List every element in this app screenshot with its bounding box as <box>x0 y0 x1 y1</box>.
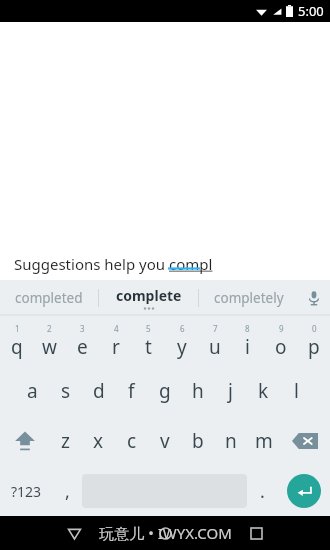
button[interactable]: 1 <box>0 316 33 366</box>
staticText: 5:00 <box>298 2 324 20</box>
button[interactable]: Backspace <box>280 416 330 466</box>
button[interactable]: m <box>247 416 280 466</box>
staticText: y <box>177 334 187 360</box>
staticText: ?123 <box>11 482 42 501</box>
button[interactable]: Voice input <box>298 280 330 316</box>
button[interactable]: Back <box>57 516 91 550</box>
button[interactable]: 6 <box>165 316 198 366</box>
button[interactable]: f <box>115 366 148 416</box>
staticText: d <box>93 378 105 404</box>
button[interactable]: . <box>247 466 277 516</box>
staticText: l <box>294 378 299 404</box>
staticText: i <box>245 334 250 360</box>
staticText: 玩意儿 • IWYX.COM <box>99 523 232 543</box>
staticText: , <box>65 479 70 504</box>
staticText: z <box>61 428 70 454</box>
button[interactable]: ?123 <box>0 466 52 516</box>
staticText: 5 <box>146 323 151 334</box>
staticText: w <box>42 334 57 360</box>
button[interactable]: x <box>82 416 115 466</box>
button[interactable]: k <box>247 366 280 416</box>
staticText: k <box>258 378 269 404</box>
staticText: h <box>192 378 204 404</box>
staticText: s <box>61 378 71 404</box>
staticText: v <box>160 428 170 454</box>
button[interactable]: 0 <box>297 316 330 366</box>
button[interactable]: c <box>115 416 148 466</box>
button[interactable]: completed <box>0 280 98 316</box>
staticText: 9 <box>279 323 284 334</box>
button[interactable]: Enter <box>277 466 330 516</box>
staticText: m <box>255 428 273 454</box>
staticText: r <box>112 334 120 360</box>
button[interactable]: v <box>148 416 181 466</box>
staticText: c <box>127 428 137 454</box>
button[interactable]: , <box>52 466 82 516</box>
staticText: t <box>145 334 152 360</box>
staticText: u <box>209 334 221 360</box>
staticText: x <box>93 428 104 454</box>
staticText: completed <box>15 289 83 307</box>
button[interactable]: 5 <box>132 316 165 366</box>
button[interactable]: complete <box>99 280 198 316</box>
button[interactable]: b <box>181 416 214 466</box>
staticText: g <box>159 378 171 404</box>
staticText: 4 <box>114 323 119 334</box>
button[interactable]: 2 <box>33 316 66 366</box>
staticText: completely <box>214 289 284 307</box>
button[interactable]: l <box>280 366 313 416</box>
staticText: o <box>275 334 287 360</box>
button[interactable]: s <box>49 366 82 416</box>
button[interactable]: Shift <box>0 416 49 466</box>
button[interactable]: j <box>214 366 247 416</box>
staticText: 3 <box>80 323 85 334</box>
staticText: p <box>308 334 320 360</box>
staticText: e <box>77 334 88 360</box>
staticText: f <box>128 378 135 404</box>
button[interactable]: z <box>49 416 82 466</box>
staticText: n <box>225 428 237 454</box>
button[interactable]: 9 <box>264 316 297 366</box>
staticText: 6 <box>180 323 185 334</box>
button[interactable]: 4 <box>99 316 132 366</box>
staticText: Suggestions help you <box>14 254 169 274</box>
staticText: b <box>192 428 204 454</box>
button[interactable]: g <box>148 366 181 416</box>
button[interactable]: 8 <box>231 316 264 366</box>
button[interactable]: Recents <box>239 516 273 550</box>
staticText: complete <box>116 286 182 305</box>
staticText: q <box>11 334 23 360</box>
staticText: 2 <box>47 323 52 334</box>
button[interactable]: d <box>82 366 115 416</box>
staticText: compl <box>169 254 213 274</box>
staticText: j <box>228 378 233 404</box>
button[interactable]: 7 <box>198 316 231 366</box>
staticText: . <box>260 479 265 504</box>
button[interactable]: completely <box>199 280 298 316</box>
staticText: 1 <box>15 323 20 334</box>
staticText: 7 <box>213 323 218 334</box>
staticText: 0 <box>312 323 317 334</box>
staticText: 8 <box>245 323 250 334</box>
button[interactable]: Home <box>148 516 182 550</box>
staticText: a <box>27 378 38 404</box>
button[interactable]: a <box>16 366 49 416</box>
button[interactable]: h <box>181 366 214 416</box>
button[interactable]: n <box>214 416 247 466</box>
button[interactable]: 3 <box>66 316 99 366</box>
